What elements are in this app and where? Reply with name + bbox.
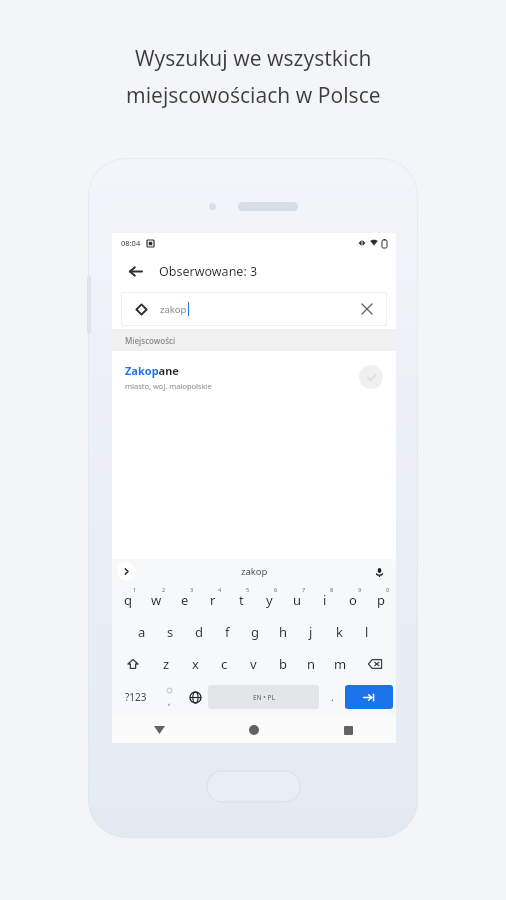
staticText: l <box>365 623 369 641</box>
staticText: e <box>181 591 189 609</box>
staticText: t <box>239 591 244 609</box>
button[interactable]: y <box>255 584 283 616</box>
staticText: d <box>195 623 203 641</box>
staticText: q <box>124 591 132 609</box>
staticText: r <box>210 591 216 609</box>
button[interactable]: Change language <box>182 680 208 714</box>
button[interactable]: e <box>171 584 199 616</box>
staticText: g <box>251 623 259 641</box>
staticText: z <box>163 655 170 673</box>
button[interactable]: Back <box>122 258 148 284</box>
button[interactable]: p <box>367 584 395 616</box>
staticText: s <box>167 623 174 641</box>
staticText: . <box>331 690 334 704</box>
staticText: f <box>225 623 230 641</box>
button[interactable]: g <box>241 616 269 648</box>
button[interactable]: i <box>311 584 339 616</box>
button[interactable]: z <box>152 648 181 680</box>
staticText: o <box>349 591 357 609</box>
button[interactable]: a <box>127 616 156 648</box>
button[interactable]: m <box>326 648 355 680</box>
button[interactable]: k <box>325 616 353 648</box>
staticText: 9 <box>358 586 362 593</box>
button[interactable]: n <box>297 648 326 680</box>
button[interactable]: ?123 <box>115 680 156 714</box>
staticText: c <box>221 655 228 673</box>
button[interactable]: u <box>283 584 311 616</box>
button[interactable]: More suggestions <box>117 562 136 581</box>
button[interactable]: f <box>213 616 241 648</box>
staticText: , <box>168 695 171 707</box>
button[interactable]: l <box>353 616 381 648</box>
button[interactable]: b <box>268 648 297 680</box>
button[interactable]: t <box>227 584 255 616</box>
staticText: Wyszukuj we wszystkich <box>135 44 372 73</box>
button[interactable]: Clear <box>357 299 377 319</box>
button[interactable]: Enter <box>345 685 393 709</box>
staticText: p <box>377 591 385 609</box>
button[interactable]: Home <box>206 717 301 743</box>
button[interactable]: EN • PL <box>208 685 319 709</box>
staticText: 08:04 <box>121 238 141 248</box>
staticText: m <box>334 655 347 673</box>
button[interactable]: Backspace <box>355 648 395 680</box>
button[interactable]: Hide keyboard <box>112 717 206 743</box>
staticText: k <box>336 623 343 641</box>
button[interactable]: Zakopane <box>112 351 396 403</box>
button[interactable]: r <box>199 584 227 616</box>
staticText: 6 <box>274 586 278 593</box>
button[interactable]: Follow <box>359 365 383 389</box>
staticText: j <box>309 623 313 641</box>
button[interactable]: Location <box>131 299 151 319</box>
staticText: zakop <box>241 565 268 578</box>
button[interactable]: h <box>269 616 297 648</box>
staticText: Zakopane <box>125 363 179 378</box>
button[interactable]: q <box>113 584 142 616</box>
staticText: 8 <box>330 586 334 593</box>
staticText: Miejscowości <box>125 335 176 346</box>
button[interactable]: w <box>142 584 171 616</box>
button[interactable]: Emoji and comma <box>156 680 182 714</box>
staticText: 0 <box>386 586 390 593</box>
staticText: Obserwowane: 3 <box>159 263 258 280</box>
staticText: u <box>293 591 302 609</box>
staticText: miasto, woj. małopolskie <box>125 381 212 391</box>
staticText: b <box>279 655 287 673</box>
button[interactable]: c <box>210 648 239 680</box>
button[interactable]: Recent apps <box>301 717 396 743</box>
staticText: x <box>192 655 199 673</box>
button[interactable]: j <box>297 616 325 648</box>
staticText: n <box>307 655 316 673</box>
button[interactable]: d <box>185 616 213 648</box>
button[interactable]: Shift <box>113 648 152 680</box>
staticText: 3 <box>190 586 194 593</box>
staticText: i <box>323 591 327 609</box>
staticText: w <box>151 591 162 609</box>
staticText: h <box>279 623 288 641</box>
staticText: ?123 <box>125 690 147 704</box>
staticText: 7 <box>302 586 306 593</box>
button[interactable]: . <box>319 680 345 714</box>
staticText: miejscowościach w Polsce <box>126 81 381 110</box>
staticText: EN • PL <box>253 693 275 702</box>
button[interactable]: s <box>156 616 185 648</box>
staticText: a <box>138 623 146 641</box>
staticText: 5 <box>246 586 250 593</box>
staticText: v <box>250 655 257 673</box>
staticText: 2 <box>162 586 166 593</box>
button[interactable]: x <box>181 648 210 680</box>
button[interactable]: v <box>239 648 268 680</box>
button[interactable]: o <box>339 584 367 616</box>
staticText: y <box>266 591 273 609</box>
staticText: 4 <box>218 586 222 593</box>
staticText: zakop <box>160 303 187 316</box>
button[interactable]: Voice input <box>370 563 388 581</box>
staticText: 1 <box>133 586 137 593</box>
